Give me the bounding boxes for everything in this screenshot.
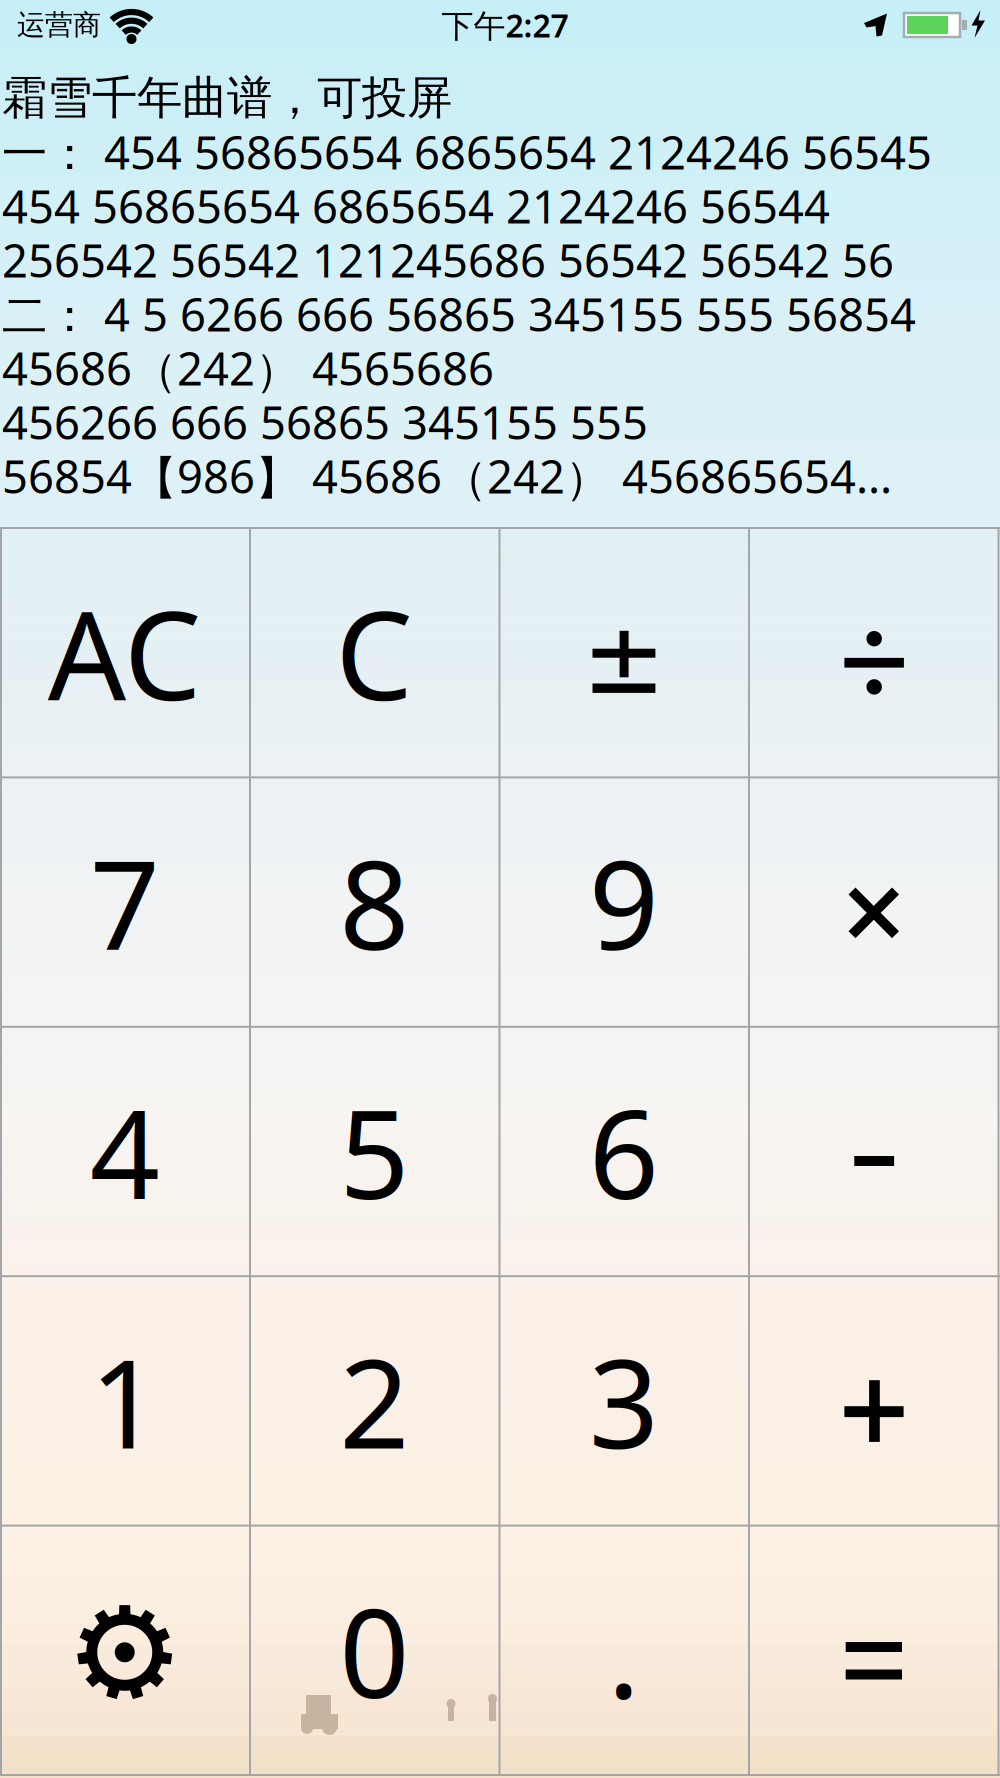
staticText: 5: [339, 1070, 409, 1233]
button[interactable]: ÷: [749, 529, 997, 776]
button[interactable]: +: [749, 1277, 997, 1525]
staticText: 下午2:27: [441, 4, 568, 46]
staticText: 4: [90, 1070, 160, 1233]
staticText: 霜雪千年曲谱，可投屏: [2, 70, 452, 126]
staticText: 456266 666 56865 345155 555: [2, 392, 648, 452]
staticText: 运营商: [17, 8, 101, 42]
staticText: 3: [589, 1319, 659, 1482]
staticText: AC: [48, 571, 202, 734]
staticText: 二： 4 5 6266 666 56865 345155 555 56854: [2, 284, 916, 344]
staticText: 1: [90, 1319, 160, 1482]
button[interactable]: AC: [1, 529, 248, 776]
staticText: 45686（242） 4565686: [2, 338, 494, 398]
button[interactable]: 1: [1, 1277, 248, 1525]
button[interactable]: 7: [1, 778, 248, 1026]
button[interactable]: C: [250, 529, 498, 776]
button[interactable]: =: [749, 1527, 997, 1774]
button[interactable]: 设置: [1, 1527, 248, 1774]
staticText: 2: [339, 1319, 409, 1482]
staticText: C: [335, 571, 413, 734]
button[interactable]: 9: [500, 778, 747, 1026]
staticText: 56854【986】 45686（242） 456865654...: [2, 446, 892, 506]
staticText: 7: [90, 821, 160, 984]
staticText: 8: [339, 821, 409, 984]
staticText: 6: [589, 1070, 659, 1233]
button[interactable]: 5: [250, 1028, 498, 1275]
staticText: .: [607, 1569, 640, 1732]
button[interactable]: -: [749, 1028, 997, 1275]
button[interactable]: 8: [250, 778, 498, 1026]
button[interactable]: ±: [500, 529, 747, 776]
button[interactable]: 3: [500, 1277, 747, 1525]
button[interactable]: 0: [250, 1527, 498, 1774]
button[interactable]: .: [500, 1527, 747, 1774]
button[interactable]: 2: [250, 1277, 498, 1525]
staticText: 256542 56542 121245686 56542 56542 56: [2, 230, 894, 290]
button[interactable]: 6: [500, 1028, 747, 1275]
staticText: 454 56865654 6865654 2124246 56544: [2, 176, 830, 236]
staticText: 0: [339, 1569, 409, 1732]
staticText: 9: [589, 821, 659, 984]
staticText: 一： 454 56865654 6865654 2124246 56545: [2, 122, 932, 182]
button[interactable]: 4: [1, 1028, 248, 1275]
button[interactable]: ×: [749, 778, 997, 1026]
